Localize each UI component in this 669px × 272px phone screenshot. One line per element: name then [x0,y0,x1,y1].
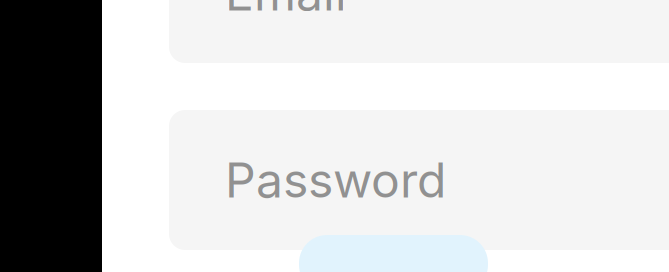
staticText: Password [225,151,446,209]
staticText: Email [225,0,347,22]
button[interactable]: Password [169,110,669,250]
button[interactable]: Email [169,0,669,63]
button[interactable]: Sign In [299,235,488,272]
